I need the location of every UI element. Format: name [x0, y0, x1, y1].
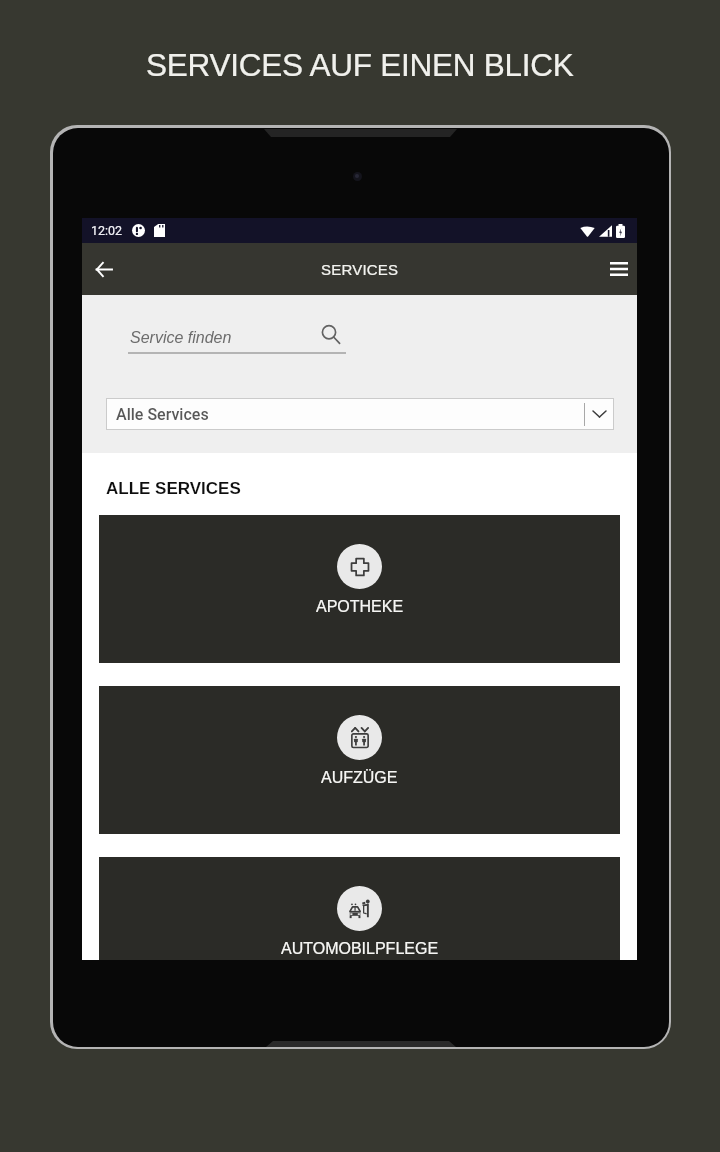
button[interactable]: Alle Services — [106, 398, 614, 430]
staticText: 12:02 — [91, 223, 123, 238]
staticText: ALLE SERVICES — [106, 479, 241, 498]
staticText: SERVICES AUF EINEN BLICK — [146, 47, 574, 82]
staticText: SERVICES — [321, 261, 399, 278]
staticText: AUTOMOBILPFLEGE — [281, 940, 439, 958]
staticText: AUFZÜGE — [321, 769, 398, 787]
staticText: APOTHEKE — [316, 598, 404, 616]
button[interactable]: APOTHEKE — [99, 515, 620, 663]
button[interactable]: AUTOMOBILPFLEGE — [99, 857, 620, 960]
staticText: Alle Services — [116, 405, 209, 424]
button[interactable]: Back — [84, 249, 124, 289]
button[interactable]: Menu — [599, 249, 639, 289]
other: Search — [321, 325, 341, 345]
button[interactable]: Service finden — [128, 317, 346, 354]
button[interactable]: AUFZÜGE — [99, 686, 620, 834]
staticText: Service finden — [130, 329, 232, 347]
